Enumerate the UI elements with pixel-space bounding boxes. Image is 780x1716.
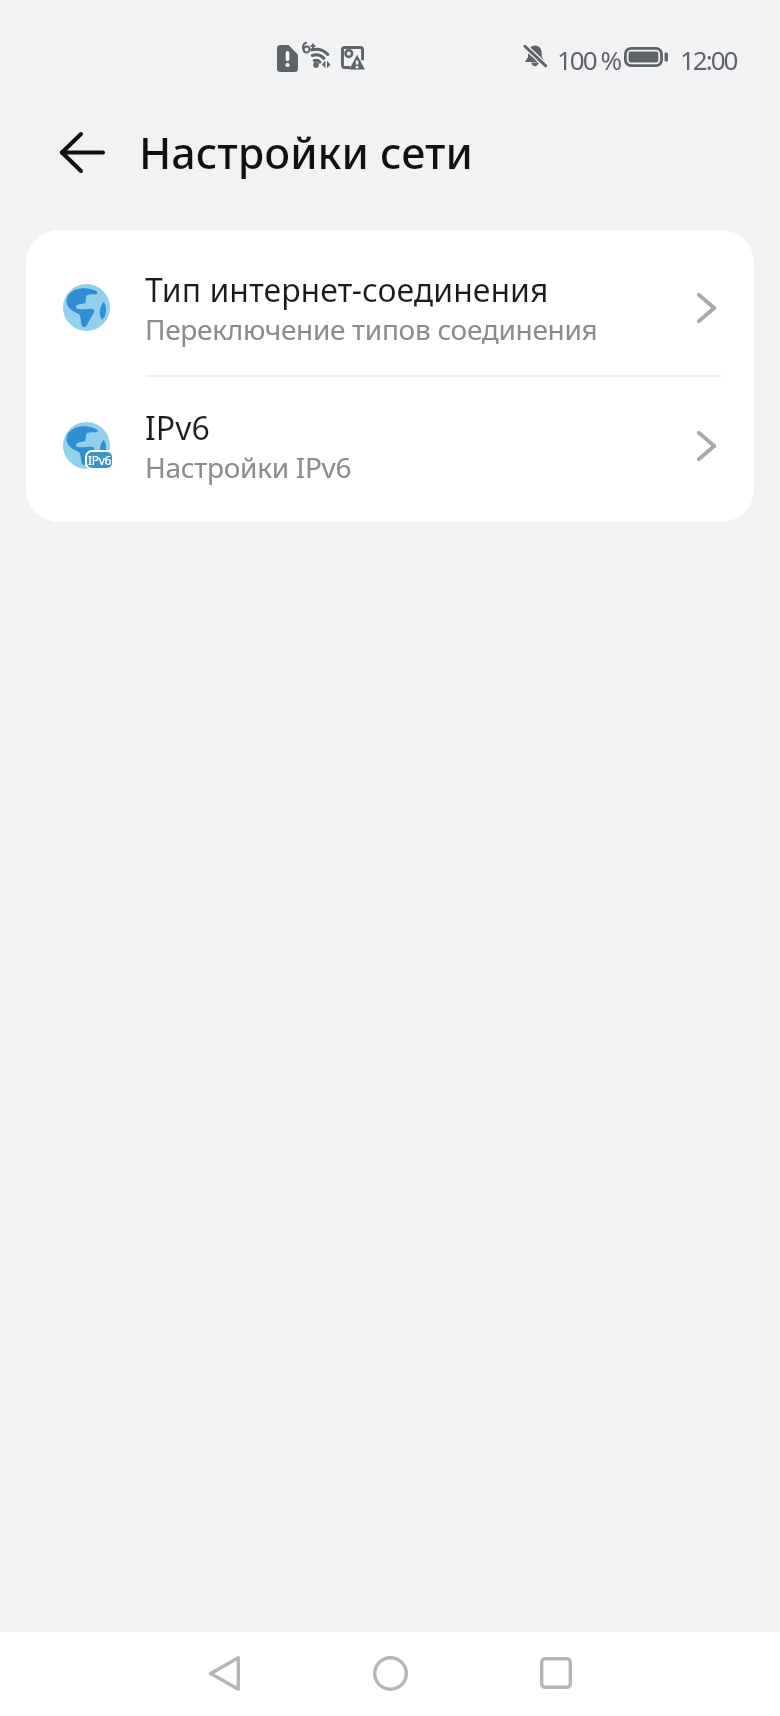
staticText: Тип интернет-соединения [145,268,549,312]
button[interactable]: Back [178,1631,270,1715]
staticText: IPv6 [88,452,112,468]
staticText: 100 % [557,42,620,77]
staticText: 12:00 [680,42,737,77]
button[interactable]: Back [52,122,112,182]
button[interactable]: Home [344,1631,436,1715]
staticText: IPv6 [145,406,210,450]
button[interactable]: Тип интернет-соединения [26,239,754,376]
button[interactable]: Recents [510,1631,602,1715]
staticText: Переключение типов соединения [145,310,598,348]
staticText: Настройки сети [139,123,473,182]
button[interactable]: IPv6 [26,377,754,514]
staticText: Настройки IPv6 [145,448,352,486]
